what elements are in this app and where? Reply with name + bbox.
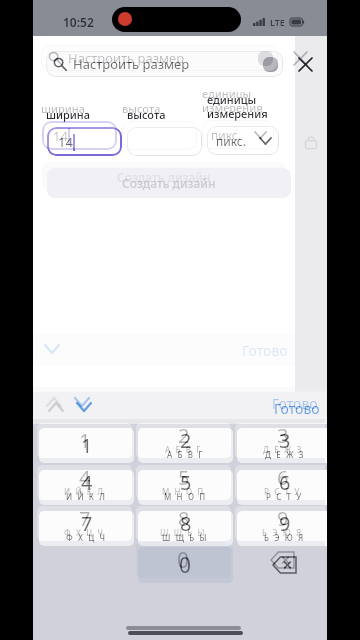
staticText: 8: [178, 506, 190, 532]
button[interactable]: [122, 121, 197, 150]
button[interactable]: 8: [136, 506, 231, 541]
staticText: Ь Э Ю Я: [262, 527, 303, 538]
staticText: Готово: [274, 399, 320, 418]
staticText: 8: [180, 511, 192, 537]
staticText: пикс.: [216, 133, 246, 149]
staticText: 5: [178, 465, 190, 491]
button[interactable]: 5: [136, 465, 231, 500]
staticText: 14: [58, 133, 73, 151]
staticText: 4: [81, 470, 93, 496]
button[interactable]: 4: [33, 412, 102, 424]
staticText: 3: [247, 370, 259, 396]
button[interactable]: пикс.: [202, 120, 274, 149]
button[interactable]: Создать дизайн: [42, 162, 286, 192]
staticText: 4: [49, 412, 61, 424]
button[interactable]: 0: [138, 547, 233, 583]
button[interactable]: Готово: [269, 389, 321, 418]
button[interactable]: Следующее поле: [70, 392, 98, 422]
staticText: 10:52: [63, 14, 94, 30]
button[interactable]: Профиль: [258, 51, 273, 66]
button[interactable]: 9: [237, 511, 327, 546]
button[interactable]: Удалить: [235, 542, 327, 578]
button[interactable]: 2: [138, 428, 233, 463]
staticText: 0: [177, 546, 190, 575]
staticText: 6: [277, 465, 289, 491]
staticText: LTE: [270, 16, 285, 28]
staticText: 7: [79, 506, 91, 532]
staticText: 3: [279, 428, 291, 454]
button[interactable]: Профиль: [263, 57, 278, 72]
staticText: 1: [81, 432, 93, 459]
staticText: 5: [148, 412, 160, 424]
staticText: 5: [180, 470, 192, 496]
staticText: Ф Х Ц Ч: [64, 527, 105, 538]
staticText: Д Е Ж З: [263, 444, 303, 455]
staticText: Настроить размер: [68, 49, 185, 67]
staticText: А Б В Г: [167, 449, 205, 460]
staticText: Ь Э Ю Я: [264, 532, 305, 543]
button[interactable]: 7: [39, 511, 134, 546]
button[interactable]: 3: [235, 423, 327, 458]
button[interactable]: 6: [237, 470, 327, 505]
button[interactable]: 6: [205, 412, 300, 424]
button[interactable]: 5: [138, 470, 233, 505]
button[interactable]: 14: [47, 127, 122, 156]
button[interactable]: 0: [136, 542, 231, 578]
staticText: высота: [127, 107, 166, 122]
staticText: ширина: [46, 107, 90, 122]
button[interactable]: Предыдущее поле: [40, 387, 68, 417]
staticText: М Н О П: [164, 491, 207, 502]
button[interactable]: 7: [37, 506, 132, 541]
button[interactable]: 14: [42, 121, 117, 150]
staticText: М Н О П: [162, 486, 205, 497]
staticText: Ш Щ Ь Ы: [162, 532, 209, 543]
staticText: 2: [148, 370, 160, 396]
staticText: 1: [49, 374, 61, 401]
button[interactable]: [127, 127, 202, 156]
staticText: 9: [279, 511, 291, 537]
button[interactable]: Настроить размер: [41, 45, 278, 71]
staticText: Создать дизайн: [117, 169, 211, 185]
staticText: Ф Х Ц Ч: [66, 532, 107, 543]
button[interactable]: 6: [235, 465, 327, 500]
button[interactable]: 4: [39, 470, 134, 505]
staticText: 3: [277, 423, 289, 449]
staticText: А Б В Г: [165, 444, 203, 455]
button[interactable]: 8: [138, 511, 233, 546]
staticText: Р С Т У: [266, 491, 303, 502]
button[interactable]: Настроить размер: [46, 51, 283, 77]
staticText: 2: [178, 423, 190, 449]
staticText: 4: [79, 465, 91, 491]
button[interactable]: 9: [235, 506, 327, 541]
button[interactable]: Следующее поле: [68, 387, 96, 417]
button[interactable]: Готово: [271, 394, 323, 423]
button[interactable]: 1: [39, 428, 134, 463]
staticText: 2: [180, 428, 192, 454]
staticText: Ш Щ Ь Ы: [160, 527, 207, 538]
staticText: ширина: [41, 101, 85, 116]
button[interactable]: Удалить: [237, 547, 327, 583]
button[interactable]: 1: [37, 423, 132, 458]
button[interactable]: Предыдущее поле: [42, 392, 70, 422]
button[interactable]: Закрыть: [293, 52, 317, 76]
button[interactable]: Закрыть: [288, 46, 312, 70]
button[interactable]: 3: [205, 370, 300, 405]
staticText: единицы измерения: [202, 86, 263, 115]
staticText: И Й К Л: [64, 486, 105, 497]
button[interactable]: 2: [136, 423, 231, 458]
button[interactable]: 3: [237, 428, 327, 463]
staticText: Создать дизайн: [122, 175, 216, 191]
button[interactable]: 4: [37, 465, 132, 500]
button[interactable]: 1: [33, 370, 102, 405]
button[interactable]: Создать дизайн: [47, 168, 291, 198]
button[interactable]: Следующее поле: [38, 334, 66, 364]
button[interactable]: Готово: [239, 336, 291, 365]
button[interactable]: пикс.: [207, 126, 279, 155]
staticText: Настроить размер: [73, 55, 190, 73]
button[interactable]: 2: [106, 370, 201, 405]
staticText: 9: [277, 506, 289, 532]
button[interactable]: 5: [106, 412, 201, 424]
staticText: высота: [122, 101, 161, 116]
